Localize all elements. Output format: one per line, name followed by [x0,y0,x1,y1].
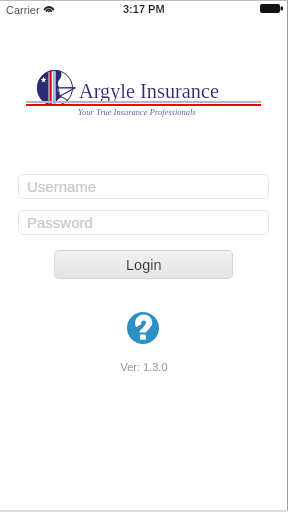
staticText: 3:17 PM [123,3,165,15]
staticText: Carrier [6,4,40,16]
staticText: Username [27,178,97,195]
button[interactable]: Username [18,174,269,199]
staticText: Password [27,214,93,231]
button[interactable]: Password [18,210,269,235]
button[interactable]: Login [54,250,233,279]
staticText: Ver: 1.3.0 [0,361,288,373]
staticText: Argyle Insurance [79,80,219,102]
staticText: Your True Insurance Professionals [78,107,196,116]
staticText: Login [126,257,162,273]
button[interactable]: Help [127,312,159,344]
